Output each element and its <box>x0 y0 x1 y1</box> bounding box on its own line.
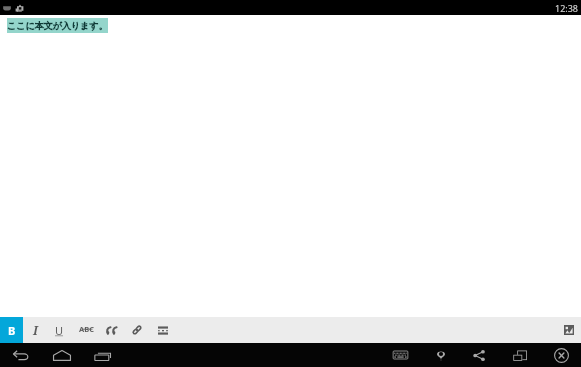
staticText: ABC <box>79 324 94 334</box>
button[interactable]: I <box>23 317 47 343</box>
button[interactable]: Close <box>541 343 581 367</box>
button[interactable]: Home <box>41 343 82 367</box>
button[interactable]: U <box>47 317 72 343</box>
button[interactable]: B <box>0 317 23 343</box>
button[interactable]: Insert link <box>124 317 150 343</box>
button[interactable]: Paragraph style <box>150 317 176 343</box>
staticText: U <box>55 323 64 338</box>
staticText: ここに本文が入ります。 <box>7 20 108 31</box>
button[interactable]: Recent apps <box>82 343 123 367</box>
button[interactable]: Insert image <box>557 317 581 343</box>
button[interactable]: Block quote <box>98 317 124 343</box>
button[interactable]: Strikethrough <box>72 317 98 343</box>
staticText: I <box>33 322 38 338</box>
staticText: 12:38 <box>555 2 579 14</box>
button[interactable]: Back <box>0 343 41 367</box>
button[interactable]: Location <box>421 343 461 367</box>
button[interactable]: Keyboard <box>380 343 420 367</box>
staticText: B <box>8 323 16 338</box>
button[interactable]: Cast screen <box>500 343 540 367</box>
button[interactable]: Share <box>459 343 499 367</box>
